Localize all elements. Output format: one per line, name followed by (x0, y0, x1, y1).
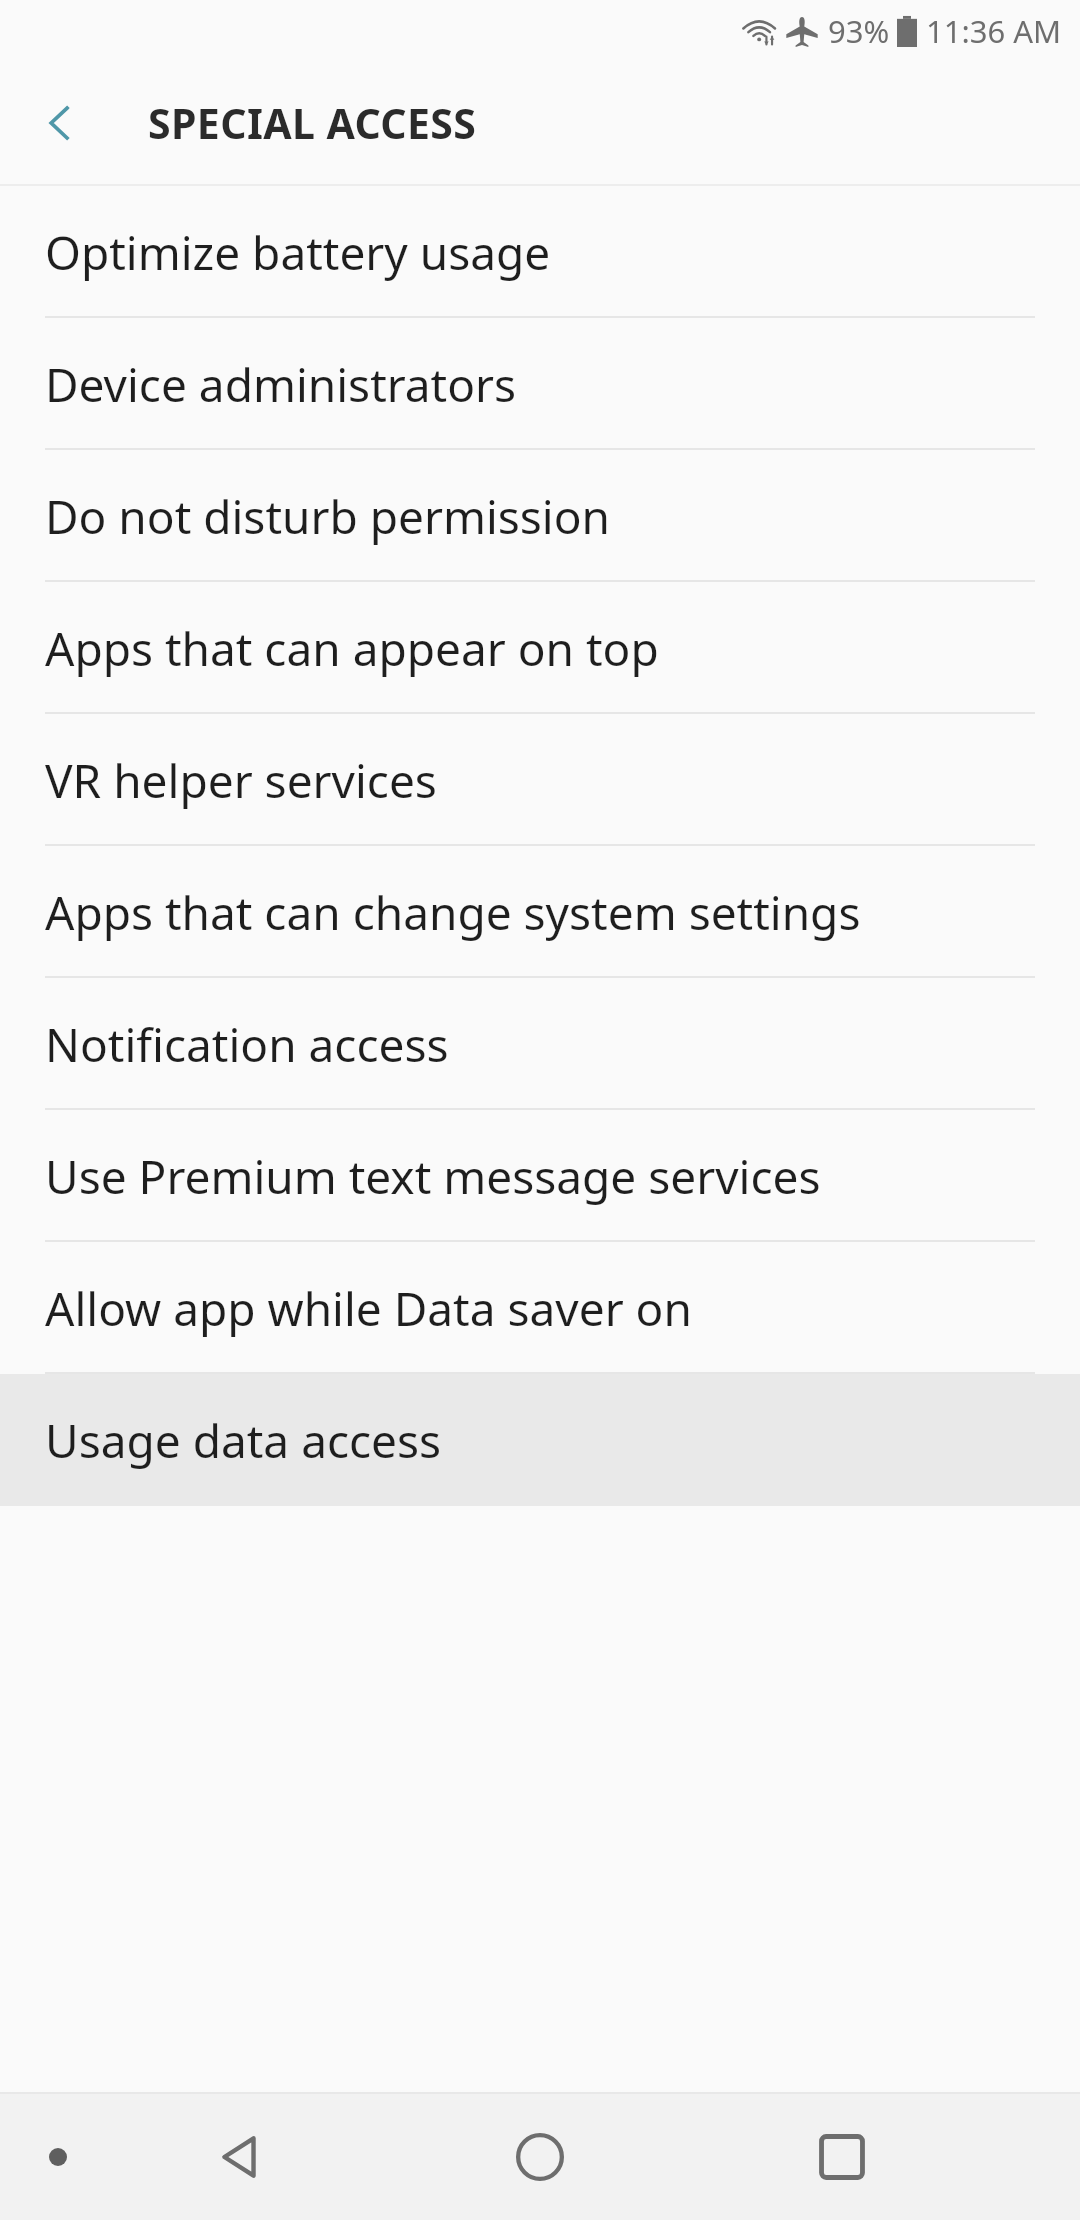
staticText: Usage data access (45, 1409, 442, 1472)
staticText: Apps that can appear on top (45, 617, 659, 680)
button[interactable]: Menu indicator (18, 2117, 98, 2197)
button[interactable]: Apps that can change system settings (0, 846, 1080, 978)
staticText: Device administrators (45, 353, 517, 416)
staticText: SPECIAL ACCESS (148, 95, 477, 151)
button[interactable]: Back (188, 2105, 292, 2209)
staticText: VR helper services (45, 749, 437, 812)
button[interactable]: Notification access (0, 978, 1080, 1110)
staticText: Do not disturb permission (45, 485, 610, 548)
button[interactable]: Use Premium text message services (0, 1110, 1080, 1242)
staticText: 11:36 AM (926, 10, 1062, 52)
staticText: Apps that can change system settings (45, 881, 861, 944)
button[interactable]: Apps that can appear on top (0, 582, 1080, 714)
staticText: Optimize battery usage (45, 221, 551, 284)
button[interactable]: Back (18, 81, 102, 165)
staticText: 93% (828, 10, 890, 52)
button[interactable]: Do not disturb permission (0, 450, 1080, 582)
button[interactable]: Usage data access (0, 1374, 1080, 1506)
staticText: Notification access (45, 1013, 449, 1076)
button[interactable]: Allow app while Data saver on (0, 1242, 1080, 1374)
button[interactable]: Device administrators (0, 318, 1080, 450)
button[interactable]: Optimize battery usage (0, 186, 1080, 318)
button[interactable]: Recent apps (790, 2105, 894, 2209)
button[interactable]: VR helper services (0, 714, 1080, 846)
staticText: Allow app while Data saver on (45, 1277, 692, 1340)
staticText: Use Premium text message services (45, 1145, 821, 1208)
button[interactable]: Home (488, 2105, 592, 2209)
